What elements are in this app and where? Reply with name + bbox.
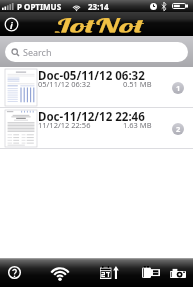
button[interactable]: Help bbox=[0, 258, 29, 287]
button[interactable]: Doc-05/11/12 06:32 bbox=[0, 67, 193, 108]
button[interactable]: Photo album bbox=[136, 258, 166, 287]
staticText: Doc-05/11/12 06:32 bbox=[38, 68, 145, 84]
button[interactable]: Camera bbox=[163, 258, 193, 287]
staticText: 0.51 MB bbox=[123, 79, 152, 89]
staticText: i bbox=[10, 19, 13, 31]
staticText: 1 bbox=[176, 83, 181, 93]
staticText: 2 bbox=[176, 124, 181, 134]
staticText: 11/12/12 22:56 bbox=[38, 120, 91, 130]
button[interactable]: Doc-11/12/12 22:46 bbox=[0, 108, 193, 149]
button[interactable]: Upload over WiFi bbox=[45, 258, 75, 287]
button[interactable]: Info bbox=[4, 17, 19, 32]
staticText: JotNot bbox=[55, 13, 144, 33]
staticText: P OPTIMUS bbox=[17, 1, 62, 12]
button[interactable]: Schedule bbox=[94, 258, 124, 287]
staticText: Search bbox=[23, 46, 52, 58]
staticText: 23:14 bbox=[88, 1, 109, 12]
staticText: 05/11/12 06:32 bbox=[38, 79, 91, 89]
button[interactable]: Search bbox=[5, 42, 188, 62]
staticText: Doc-11/12/12 22:46 bbox=[38, 109, 145, 125]
staticText: 1.63 MB bbox=[123, 120, 152, 130]
